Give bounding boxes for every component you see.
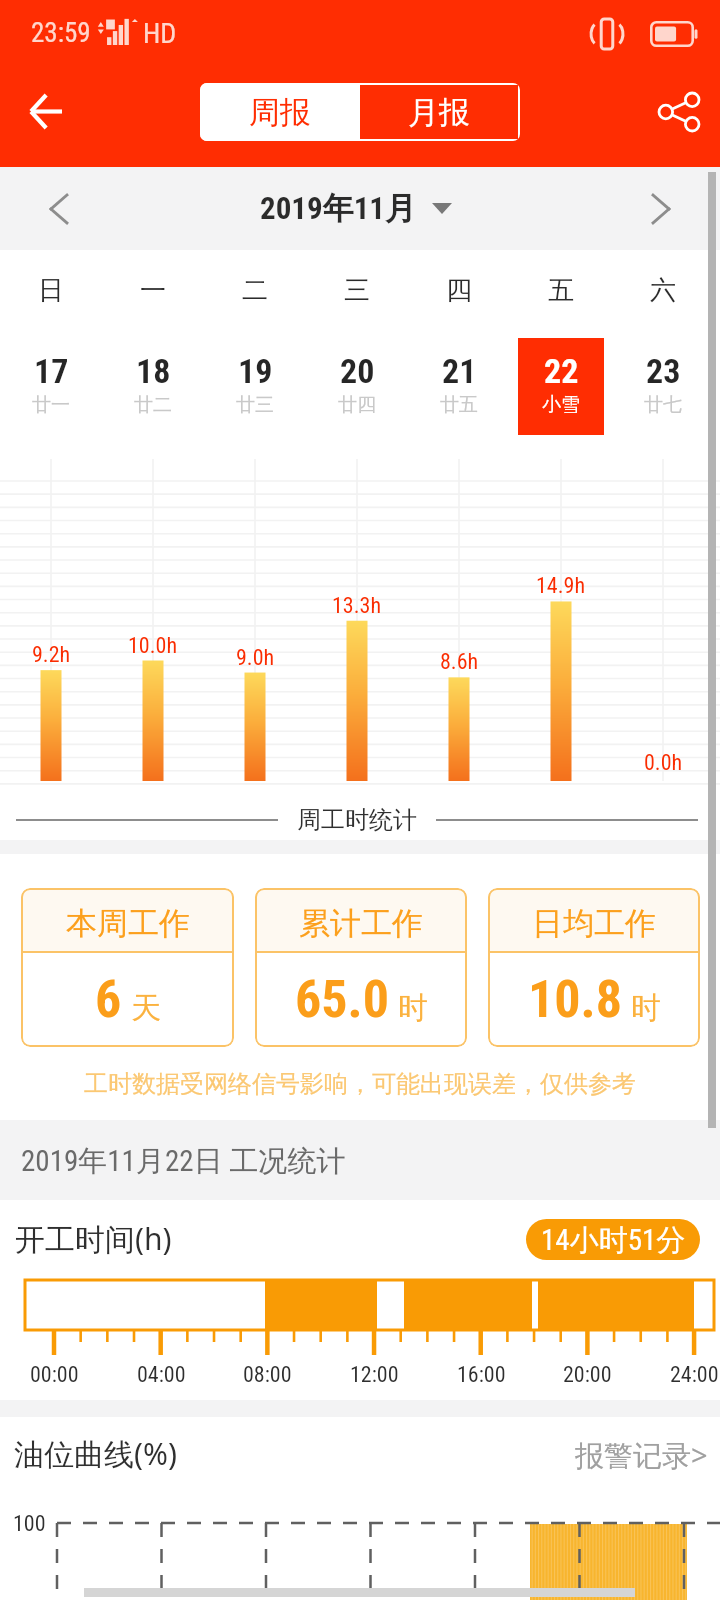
staticText: 21	[442, 351, 477, 391]
staticText: 9.2h	[32, 642, 71, 668]
staticText: 100	[13, 1511, 46, 1537]
staticText: 月报	[408, 93, 470, 132]
staticText: 累计工作	[299, 904, 423, 943]
button[interactable]: 23	[612, 330, 714, 440]
staticText: 二	[242, 274, 268, 307]
button[interactable]: 日均工作	[488, 888, 700, 1047]
staticText: 时	[631, 989, 661, 1027]
staticText: 时	[398, 989, 428, 1027]
button[interactable]: Back	[0, 68, 100, 167]
staticText: 65.0	[295, 969, 389, 1030]
staticText: 24:00	[670, 1362, 719, 1388]
staticText: 12:00	[350, 1362, 399, 1388]
staticText: 周报	[249, 93, 311, 132]
staticText: 10.8	[528, 969, 622, 1030]
staticText: 13.3h	[332, 593, 382, 619]
staticText: 油位曲线(%)	[14, 1433, 177, 1474]
button[interactable]: 19	[204, 330, 306, 440]
button[interactable]: Share	[620, 68, 720, 167]
staticText: 19	[238, 351, 273, 391]
staticText: 五	[548, 274, 574, 307]
staticText: 周工时统计	[297, 805, 417, 835]
staticText: 小雪	[542, 393, 580, 417]
staticText: 6	[95, 969, 122, 1030]
staticText: 0.0h	[644, 750, 683, 776]
staticText: 10.0h	[128, 633, 178, 659]
staticText: 23	[646, 351, 681, 391]
staticText: 工时数据受网络信号影响，可能出现误差，仅供参考	[0, 1069, 720, 1099]
staticText: 廿二	[134, 393, 172, 417]
staticText: 20	[340, 351, 375, 391]
staticText: 22	[544, 351, 579, 391]
button[interactable]: 18	[102, 330, 204, 440]
button[interactable]: 2019年11月	[260, 189, 452, 228]
button[interactable]: 21	[408, 330, 510, 440]
staticText: 04:00	[137, 1362, 186, 1388]
staticText: 一	[140, 274, 166, 307]
button[interactable]: 月报	[360, 85, 518, 139]
staticText: 17	[34, 351, 69, 391]
staticText: 18	[136, 351, 171, 391]
staticText: 9.0h	[236, 645, 275, 671]
button[interactable]: 14小时51分	[526, 1219, 700, 1260]
staticText: 本周工作	[66, 904, 190, 943]
staticText: 报警记录>	[575, 1435, 708, 1475]
staticText: 08:00	[243, 1362, 292, 1388]
staticText: 六	[650, 274, 676, 307]
staticText: 三	[344, 274, 370, 307]
button[interactable]: 周报	[200, 83, 360, 141]
button[interactable]: 22	[510, 330, 612, 440]
button[interactable]: 20	[306, 330, 408, 440]
staticText: 天	[131, 989, 161, 1027]
staticText: 廿一	[32, 393, 70, 417]
staticText: 日	[38, 274, 64, 307]
staticText: 8.6h	[440, 649, 479, 675]
staticText: 2019年11月22日 工况统计	[21, 1143, 346, 1180]
staticText: 廿四	[338, 393, 376, 417]
staticText: 14.9h	[536, 573, 586, 599]
button[interactable]: 报警记录>	[575, 1435, 708, 1475]
staticText: 23:59	[31, 17, 91, 49]
staticText: 2019年11月	[260, 189, 416, 228]
staticText: 20:00	[563, 1362, 612, 1388]
staticText: 16:00	[457, 1362, 506, 1388]
staticText: 14小时51分	[541, 1222, 686, 1259]
button[interactable]: 本周工作	[21, 888, 234, 1047]
staticText: 日均工作	[532, 904, 656, 943]
staticText: HD	[143, 17, 177, 50]
staticText: 廿三	[236, 393, 274, 417]
button[interactable]: 累计工作	[255, 888, 467, 1047]
button[interactable]: Previous month	[0, 167, 110, 250]
staticText: 00:00	[30, 1362, 79, 1388]
staticText: 开工时间(h)	[15, 1218, 172, 1259]
button[interactable]: Next month	[610, 167, 720, 250]
staticText: 四	[446, 274, 472, 307]
staticText: 廿七	[644, 393, 682, 417]
button[interactable]: 17	[0, 330, 102, 440]
staticText: 廿五	[440, 393, 478, 417]
